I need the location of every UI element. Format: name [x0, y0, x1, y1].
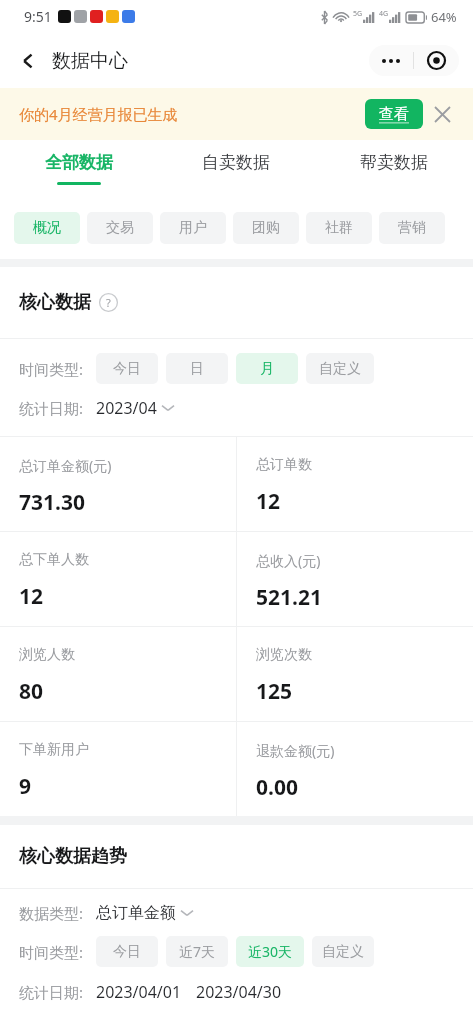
- button[interactable]: 总下单人数: [0, 532, 236, 626]
- staticText: 总订单金额(元): [19, 456, 112, 475]
- staticText: 你的4月经营月报已生成: [19, 104, 178, 124]
- button[interactable]: 返回: [8, 41, 48, 81]
- button[interactable]: 关闭提示: [423, 95, 461, 133]
- staticText: 521.21: [256, 583, 322, 612]
- staticText: 731.30: [19, 488, 85, 517]
- staticText: 浏览人数: [19, 646, 75, 664]
- staticText: 时间类型:: [19, 942, 84, 962]
- staticText: 2023/04: [96, 397, 157, 419]
- button[interactable]: 今日: [96, 353, 158, 384]
- staticText: 今日: [113, 360, 141, 378]
- button[interactable]: 自定义: [306, 353, 374, 384]
- staticText: 全部数据: [45, 152, 113, 173]
- button[interactable]: 更多: [369, 59, 413, 63]
- button[interactable]: 近30天: [236, 936, 304, 967]
- staticText: 2023/04/01: [96, 981, 182, 1003]
- button[interactable]: 社群: [306, 212, 372, 244]
- button[interactable]: 数据类型:: [19, 903, 473, 923]
- button[interactable]: 自定义: [312, 936, 374, 967]
- button[interactable]: 帮卖数据: [315, 140, 473, 196]
- staticText: 团购: [252, 219, 280, 237]
- staticText: 数据中心: [52, 49, 128, 73]
- staticText: 0.00: [256, 773, 298, 802]
- staticText: 查看: [379, 105, 409, 124]
- button[interactable]: 统计日期:: [19, 397, 473, 419]
- staticText: 总订单金额: [96, 903, 176, 923]
- button[interactable]: 浏览次数: [237, 627, 473, 721]
- button[interactable]: 总订单数: [237, 437, 473, 531]
- staticText: 12: [19, 582, 44, 611]
- staticText: 5G: [353, 9, 363, 19]
- button[interactable]: 全部数据: [0, 140, 157, 196]
- staticText: 帮卖数据: [360, 152, 428, 173]
- staticText: 自定义: [322, 943, 364, 961]
- staticText: 近30天: [248, 942, 293, 961]
- staticText: 浏览次数: [256, 646, 312, 664]
- staticText: 自卖数据: [202, 152, 270, 173]
- staticText: 2023/04/30: [196, 981, 282, 1003]
- button[interactable]: 团购: [233, 212, 299, 244]
- staticText: 下单新用户: [19, 741, 89, 759]
- staticText: ?: [106, 295, 111, 310]
- button[interactable]: 查看: [365, 99, 423, 129]
- staticText: 9:51: [24, 7, 52, 26]
- button[interactable]: 日: [166, 353, 228, 384]
- staticText: 4G: [379, 9, 389, 19]
- button[interactable]: 今日: [96, 936, 158, 967]
- button[interactable]: 总收入(元): [237, 532, 473, 626]
- staticText: 9: [19, 772, 32, 801]
- staticText: 总订单数: [256, 456, 312, 474]
- staticText: 今日: [113, 943, 141, 961]
- button[interactable]: 帮助说明: [99, 293, 118, 312]
- staticText: 近7天: [179, 942, 216, 961]
- staticText: 64%: [431, 8, 457, 26]
- button[interactable]: 用户: [160, 212, 226, 244]
- staticText: 概况: [33, 219, 61, 237]
- staticText: 统计日期:: [19, 398, 84, 418]
- button[interactable]: 关闭: [414, 52, 459, 69]
- staticText: 用户: [179, 219, 207, 237]
- staticText: 核心数据: [19, 291, 91, 314]
- button[interactable]: 浏览人数: [0, 627, 236, 721]
- button[interactable]: 营销: [379, 212, 445, 244]
- staticText: 日: [190, 360, 204, 378]
- staticText: 12: [256, 487, 281, 516]
- staticText: 总下单人数: [19, 551, 89, 569]
- button[interactable]: 近7天: [166, 936, 228, 967]
- staticText: 核心数据趋势: [19, 845, 127, 868]
- staticText: 80: [19, 677, 44, 706]
- staticText: 数据类型:: [19, 903, 84, 923]
- staticText: 月: [260, 360, 274, 378]
- staticText: 社群: [325, 219, 353, 237]
- staticText: 营销: [398, 219, 426, 237]
- staticText: 125: [256, 677, 293, 706]
- button[interactable]: 月: [236, 353, 298, 384]
- button[interactable]: 自卖数据: [157, 140, 315, 196]
- button[interactable]: 概况: [14, 212, 80, 244]
- staticText: 退款金额(元): [256, 741, 335, 760]
- staticText: 统计日期:: [19, 982, 84, 1002]
- button[interactable]: 下单新用户: [0, 722, 236, 816]
- staticText: 交易: [106, 219, 134, 237]
- button[interactable]: 交易: [87, 212, 153, 244]
- staticText: 总收入(元): [256, 551, 321, 570]
- staticText: 时间类型:: [19, 359, 84, 379]
- staticText: 自定义: [319, 360, 361, 378]
- button[interactable]: 总订单金额(元): [0, 437, 236, 531]
- button[interactable]: 退款金额(元): [237, 722, 473, 816]
